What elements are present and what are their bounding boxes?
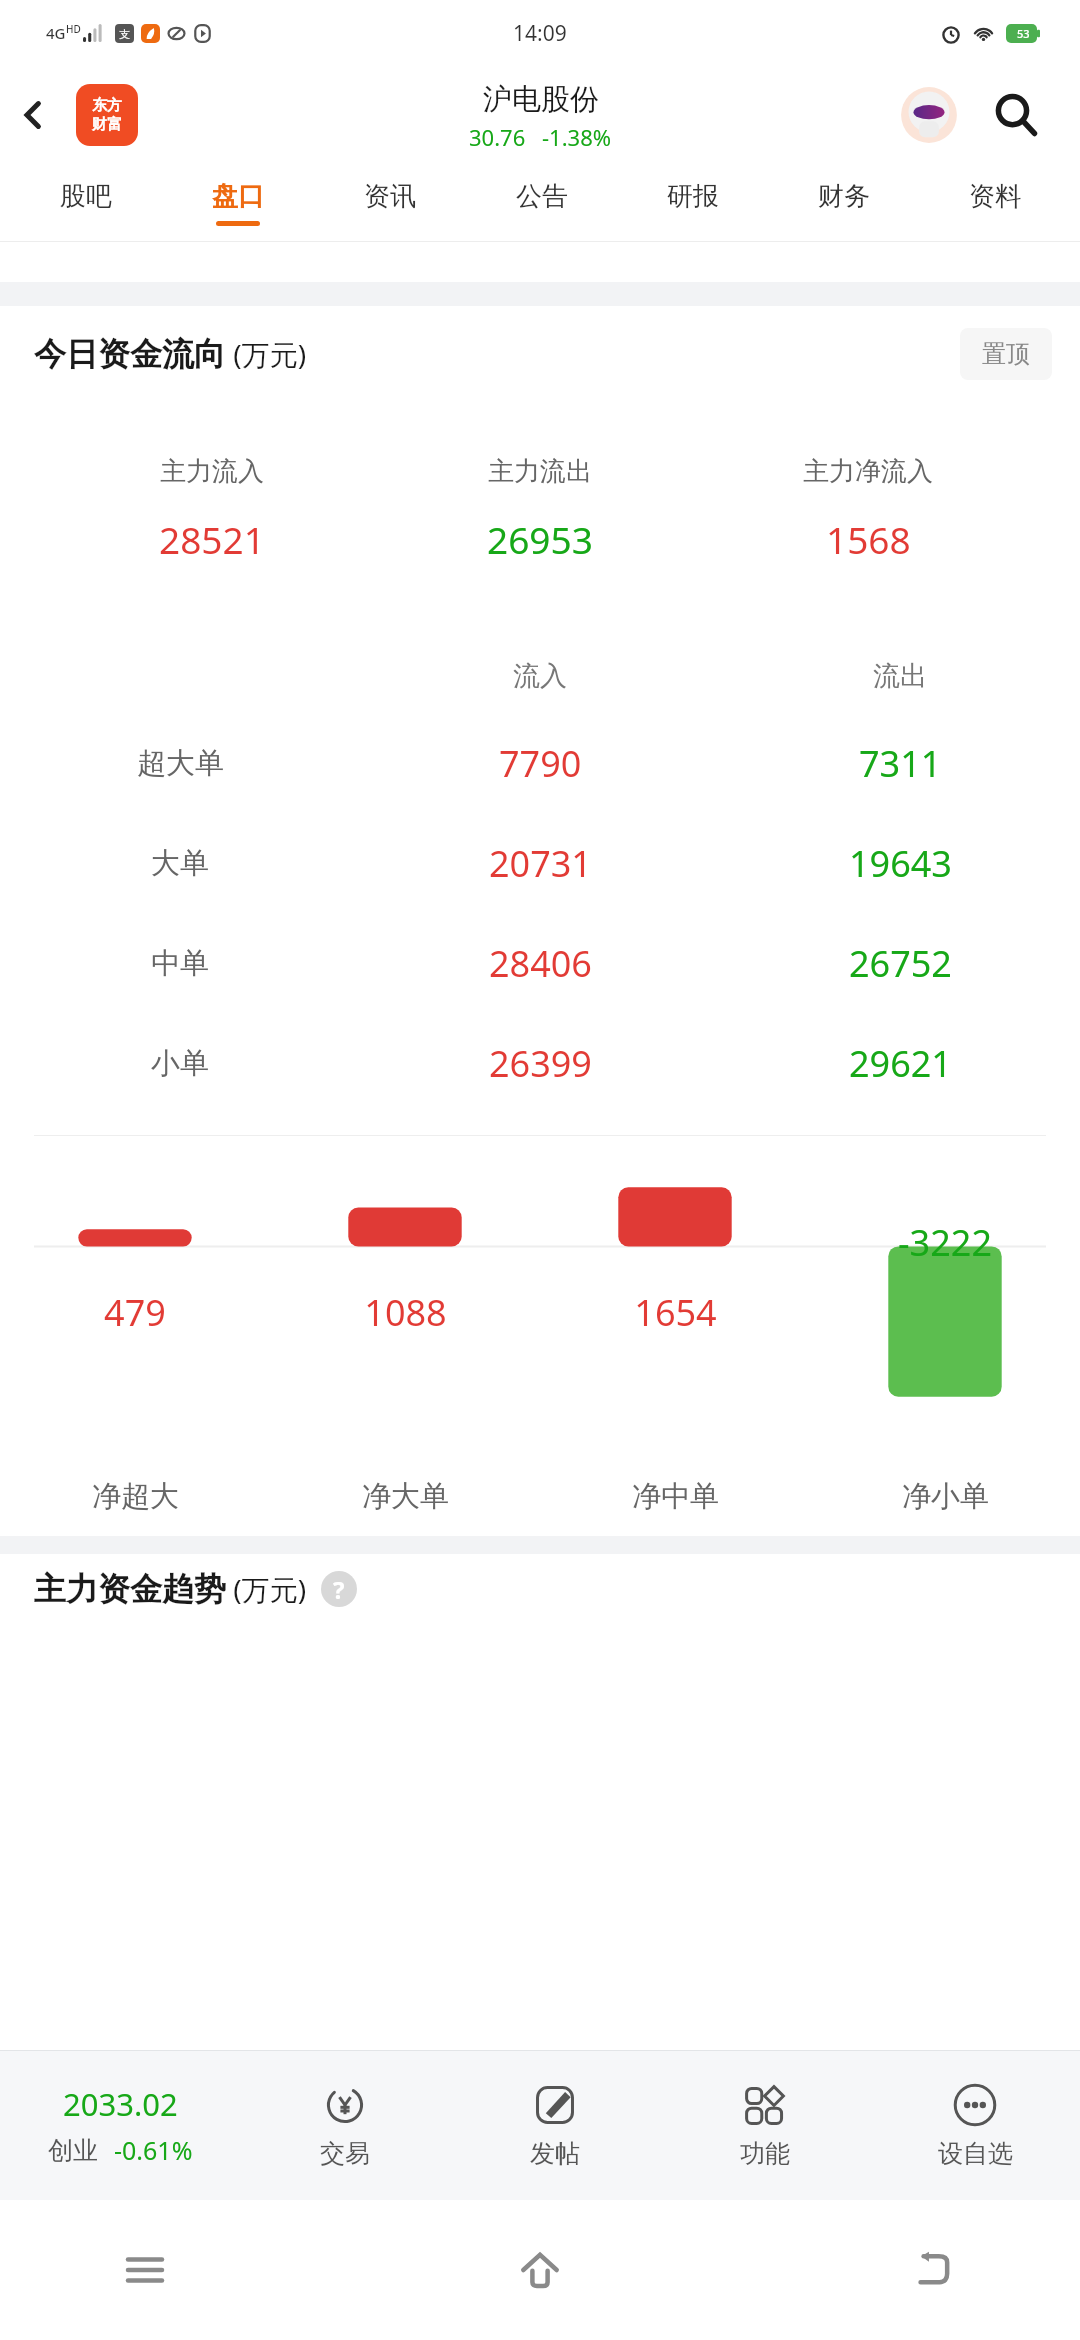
button[interactable]: 财务 xyxy=(768,163,919,242)
staticText: -3222 xyxy=(898,1218,992,1267)
staticText: 1568 xyxy=(826,514,911,564)
button[interactable]: 发帖 xyxy=(450,2050,660,2200)
staticText: 30.76 xyxy=(469,122,526,152)
button[interactable]: Search xyxy=(980,79,1052,151)
staticText: ? xyxy=(333,1573,345,1606)
staticText: 净大单 xyxy=(362,1478,449,1515)
staticText: 交易 xyxy=(320,2138,370,2169)
staticText: 14:09 xyxy=(513,19,567,48)
button[interactable]: Help xyxy=(321,1571,357,1607)
staticText: 盘口 xyxy=(212,180,264,213)
button[interactable]: 设自选 xyxy=(870,2050,1080,2200)
button[interactable]: Back xyxy=(890,2225,980,2315)
staticText: 净中单 xyxy=(632,1478,719,1515)
staticText: 53 xyxy=(1017,26,1030,41)
staticText: 7790 xyxy=(499,739,582,788)
staticText: 2033.02 xyxy=(63,2083,178,2125)
button[interactable]: 交易 xyxy=(240,2050,450,2200)
staticText: 流入 xyxy=(513,659,567,693)
button[interactable]: 中单 xyxy=(0,913,1080,1013)
button[interactable]: Back xyxy=(0,66,66,163)
staticText: 19643 xyxy=(849,839,952,888)
button[interactable]: 研报 xyxy=(617,163,768,242)
staticText: 发帖 xyxy=(530,2138,580,2169)
button[interactable]: 置顶 xyxy=(960,328,1052,380)
staticText: 净小单 xyxy=(902,1478,989,1515)
button[interactable]: 股吧 xyxy=(10,163,162,242)
staticText: 26752 xyxy=(849,939,952,988)
staticText: 今日资金流向 xyxy=(34,334,226,374)
staticText: 资料 xyxy=(969,180,1021,213)
button[interactable]: 功能 xyxy=(660,2050,870,2200)
staticText: 1654 xyxy=(634,1288,717,1337)
staticText: 净超大 xyxy=(92,1478,179,1515)
staticText: 研报 xyxy=(667,180,719,213)
staticText: 主力净流入 xyxy=(803,455,933,488)
staticText: 财富 xyxy=(92,115,122,134)
button[interactable]: 主力净流入 xyxy=(704,402,1032,617)
staticText: 大单 xyxy=(151,845,209,882)
staticText: 28406 xyxy=(489,939,592,988)
button[interactable]: 东方 xyxy=(76,84,138,146)
staticText: 置顶 xyxy=(982,339,1030,369)
staticText: 26399 xyxy=(489,1039,592,1088)
button[interactable]: 主力流入 xyxy=(48,402,376,617)
staticText: 功能 xyxy=(740,2138,790,2169)
button[interactable]: 资讯 xyxy=(314,163,466,242)
staticText: 东方 xyxy=(92,96,122,115)
staticText: -1.38% xyxy=(542,122,612,152)
button[interactable]: 大单 xyxy=(0,813,1080,913)
staticText: 资讯 xyxy=(364,180,416,213)
staticText: 29621 xyxy=(849,1039,952,1088)
staticText: 中单 xyxy=(151,945,209,982)
staticText: 财务 xyxy=(818,180,870,213)
staticText: 股吧 xyxy=(60,180,112,213)
staticText: 沪电股份 xyxy=(483,81,599,118)
staticText: 流出 xyxy=(873,659,927,693)
staticText: 1088 xyxy=(364,1288,447,1337)
button[interactable]: 公告 xyxy=(466,163,617,242)
staticText: 28521 xyxy=(159,514,265,564)
button[interactable]: Recent apps xyxy=(100,2225,190,2315)
button[interactable]: 小单 xyxy=(0,1013,1080,1113)
staticText: HD xyxy=(66,22,81,36)
button[interactable]: 资料 xyxy=(919,163,1070,242)
button[interactable]: 超大单 xyxy=(0,713,1080,813)
staticText: 26953 xyxy=(487,514,593,564)
button[interactable]: 主力流出 xyxy=(376,402,704,617)
staticText: -0.61% xyxy=(114,2133,193,2167)
staticText: 创业 xyxy=(48,2135,98,2166)
button[interactable]: 2033.02 xyxy=(0,2050,240,2200)
staticText: 设自选 xyxy=(938,2138,1013,2169)
staticText: 7311 xyxy=(859,739,942,788)
button[interactable]: 盘口 xyxy=(162,163,314,242)
button[interactable]: AI assistant xyxy=(898,84,960,146)
staticText: 主力流出 xyxy=(488,455,592,488)
staticText: 479 xyxy=(104,1288,166,1337)
staticText: (万元) xyxy=(226,335,307,373)
staticText: 主力流入 xyxy=(160,455,264,488)
staticText: 支 xyxy=(119,27,130,41)
staticText: 4G xyxy=(46,23,66,43)
staticText: 小单 xyxy=(151,1045,209,1082)
button[interactable]: Home xyxy=(495,2225,585,2315)
staticText: 主力资金趋势 xyxy=(34,1569,226,1609)
staticText: (万元) xyxy=(226,1570,307,1608)
staticText: 公告 xyxy=(516,180,568,213)
staticText: 超大单 xyxy=(137,745,224,782)
staticText: 20731 xyxy=(489,839,592,888)
